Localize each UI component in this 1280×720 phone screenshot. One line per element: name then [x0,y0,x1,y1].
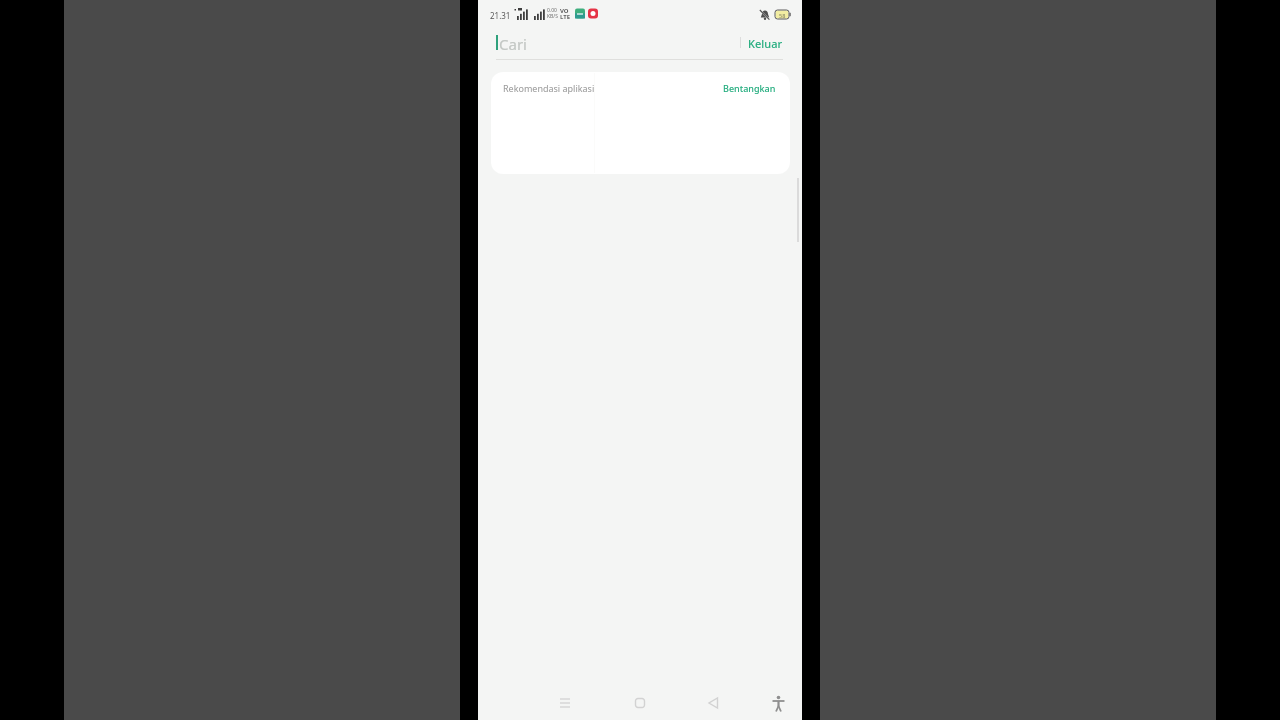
button[interactable] [721,690,802,720]
button[interactable] [640,690,721,720]
button[interactable] [559,690,640,720]
staticText: Keluar [748,36,783,51]
button[interactable]: Rekomendasi aplikasi [491,72,790,174]
staticText: Bentangkan [723,82,776,94]
staticText: LTE [560,13,571,21]
button[interactable] [490,28,740,58]
button[interactable]: Bentangkan [723,82,776,94]
staticText: 21.31 [490,10,511,21]
staticText: Rekomendasi aplikasi [503,82,595,94]
staticText: VO [560,7,569,15]
staticText: 58 [779,12,786,19]
staticText: KB/S [547,13,558,20]
staticText: 0.00 [547,7,557,14]
staticText: Cari [499,34,527,54]
button[interactable]: Keluar [748,36,783,51]
